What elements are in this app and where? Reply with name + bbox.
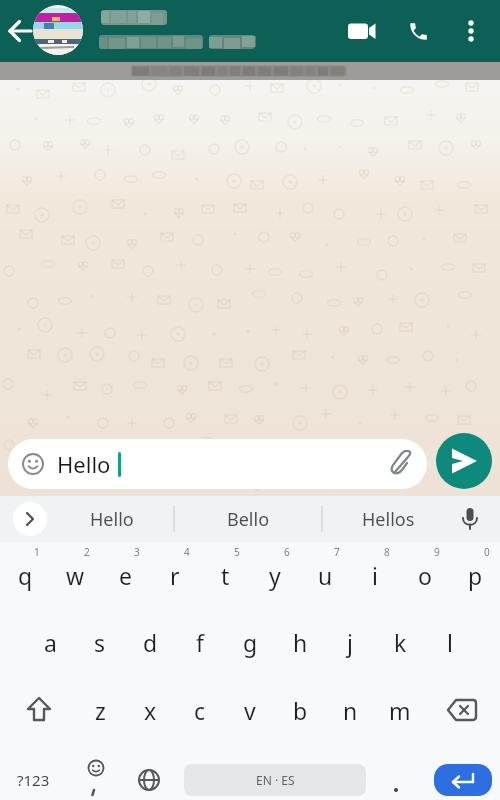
button[interactable]: c <box>175 676 225 744</box>
staticText: ?123 <box>17 770 50 790</box>
button[interactable] <box>348 0 404 62</box>
staticText: s <box>94 627 106 658</box>
staticText: t <box>221 560 230 591</box>
button[interactable]: r <box>150 542 200 608</box>
staticText: d <box>143 627 158 658</box>
staticText: Hellos <box>362 507 415 532</box>
staticText: 6 <box>284 545 290 559</box>
staticText: r <box>170 560 180 591</box>
button[interactable]: z <box>75 676 125 744</box>
staticText: p <box>468 560 483 591</box>
button[interactable]: u <box>300 542 350 608</box>
staticText: h <box>293 627 308 658</box>
button[interactable]: s <box>75 608 125 676</box>
button[interactable]: f <box>175 608 225 676</box>
staticText: EN · ES <box>256 772 295 788</box>
staticText: m <box>389 695 411 726</box>
staticText: q <box>18 560 33 591</box>
staticText: i <box>372 560 378 591</box>
button[interactable]: g <box>225 608 275 676</box>
staticText: l <box>447 627 453 658</box>
button[interactable]: Hello <box>8 439 427 489</box>
button[interactable] <box>404 0 464 62</box>
staticText: 3 <box>134 545 140 559</box>
button[interactable]: j <box>325 608 375 676</box>
staticText: g <box>243 627 258 658</box>
button[interactable] <box>456 496 500 542</box>
button[interactable]: Bello <box>198 496 298 542</box>
staticText: Hello <box>90 507 134 532</box>
staticText: x <box>144 695 157 726</box>
button[interactable]: ?123 <box>0 764 66 796</box>
button[interactable]: Hellos <box>338 496 438 542</box>
staticText: o <box>418 560 432 591</box>
button[interactable]: Hello <box>62 496 162 542</box>
button[interactable]: v <box>225 676 275 744</box>
staticText: 4 <box>184 545 190 559</box>
staticText: y <box>269 560 281 591</box>
staticText: e <box>119 560 132 591</box>
button[interactable] <box>425 676 488 744</box>
staticText: b <box>293 695 308 726</box>
staticText: f <box>196 627 204 658</box>
button[interactable]: d <box>125 608 175 676</box>
button[interactable]: a <box>25 608 75 676</box>
staticText: w <box>66 560 85 591</box>
button[interactable]: b <box>275 676 325 744</box>
button[interactable] <box>436 433 492 489</box>
button[interactable]: w <box>50 542 100 608</box>
button[interactable]: p <box>450 542 500 608</box>
staticText: 5 <box>234 545 240 559</box>
button[interactable] <box>366 764 426 796</box>
staticText: c <box>194 695 206 726</box>
button[interactable]: q <box>0 542 50 608</box>
button[interactable]: h <box>275 608 325 676</box>
staticText: 1 <box>34 545 40 559</box>
button[interactable]: l <box>425 608 475 676</box>
staticText: k <box>394 627 407 658</box>
button[interactable]: m <box>375 676 425 744</box>
button[interactable]: n <box>325 676 375 744</box>
button[interactable]: k <box>375 608 425 676</box>
staticText: Bello <box>227 507 270 532</box>
button[interactable] <box>122 764 176 796</box>
button[interactable]: EN · ES <box>184 764 366 796</box>
staticText: v <box>244 695 256 726</box>
button[interactable]: y <box>250 542 300 608</box>
staticText: 9 <box>434 545 440 559</box>
button[interactable] <box>66 764 122 796</box>
staticText: 8 <box>384 545 390 559</box>
button[interactable] <box>12 676 75 744</box>
button[interactable]: e <box>100 542 150 608</box>
staticText: n <box>343 695 358 726</box>
staticText: 7 <box>334 545 340 559</box>
button[interactable]: o <box>400 542 450 608</box>
staticText: a <box>44 627 57 658</box>
staticText: 0 <box>484 545 490 559</box>
button[interactable] <box>13 502 47 536</box>
staticText: j <box>347 627 353 658</box>
staticText: 2 <box>84 545 90 559</box>
button[interactable] <box>0 0 95 62</box>
button[interactable]: t <box>200 542 250 608</box>
button[interactable] <box>464 0 500 62</box>
staticText: z <box>95 695 106 726</box>
button[interactable]: x <box>125 676 175 744</box>
staticText: Hello <box>57 449 111 479</box>
button[interactable]: i <box>350 542 400 608</box>
button[interactable] <box>434 764 492 796</box>
staticText: u <box>318 560 333 591</box>
